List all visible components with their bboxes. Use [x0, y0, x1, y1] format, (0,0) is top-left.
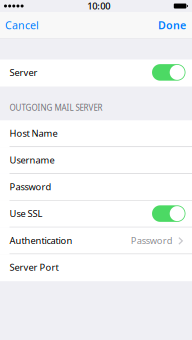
staticText: Done: [158, 18, 186, 32]
button[interactable]: Password: [0, 174, 192, 201]
staticText: Username: [9, 154, 54, 166]
button[interactable]: Username: [0, 147, 192, 174]
button[interactable]: Use SSL: [0, 201, 192, 227]
staticText: Cancel: [5, 18, 39, 32]
button[interactable]: Host Name: [0, 120, 192, 147]
button[interactable]: Authentication: [0, 227, 192, 254]
staticText: Authentication: [9, 234, 72, 246]
button[interactable]: Cancel: [0, 12, 44, 38]
staticText: Password: [9, 180, 51, 193]
staticText: Server: [9, 66, 37, 78]
button[interactable]: Done: [153, 12, 192, 38]
staticText: 10:00: [87, 0, 110, 12]
staticText: Host Name: [9, 127, 57, 139]
button[interactable]: Server Port: [0, 254, 192, 281]
staticText: Password: [131, 234, 173, 246]
staticText: OUTGOING MAIL SERVER: [9, 102, 102, 113]
button[interactable]: Server: [0, 59, 192, 86]
staticText: Server Port: [9, 261, 58, 273]
staticText: Use SSL: [9, 207, 42, 220]
